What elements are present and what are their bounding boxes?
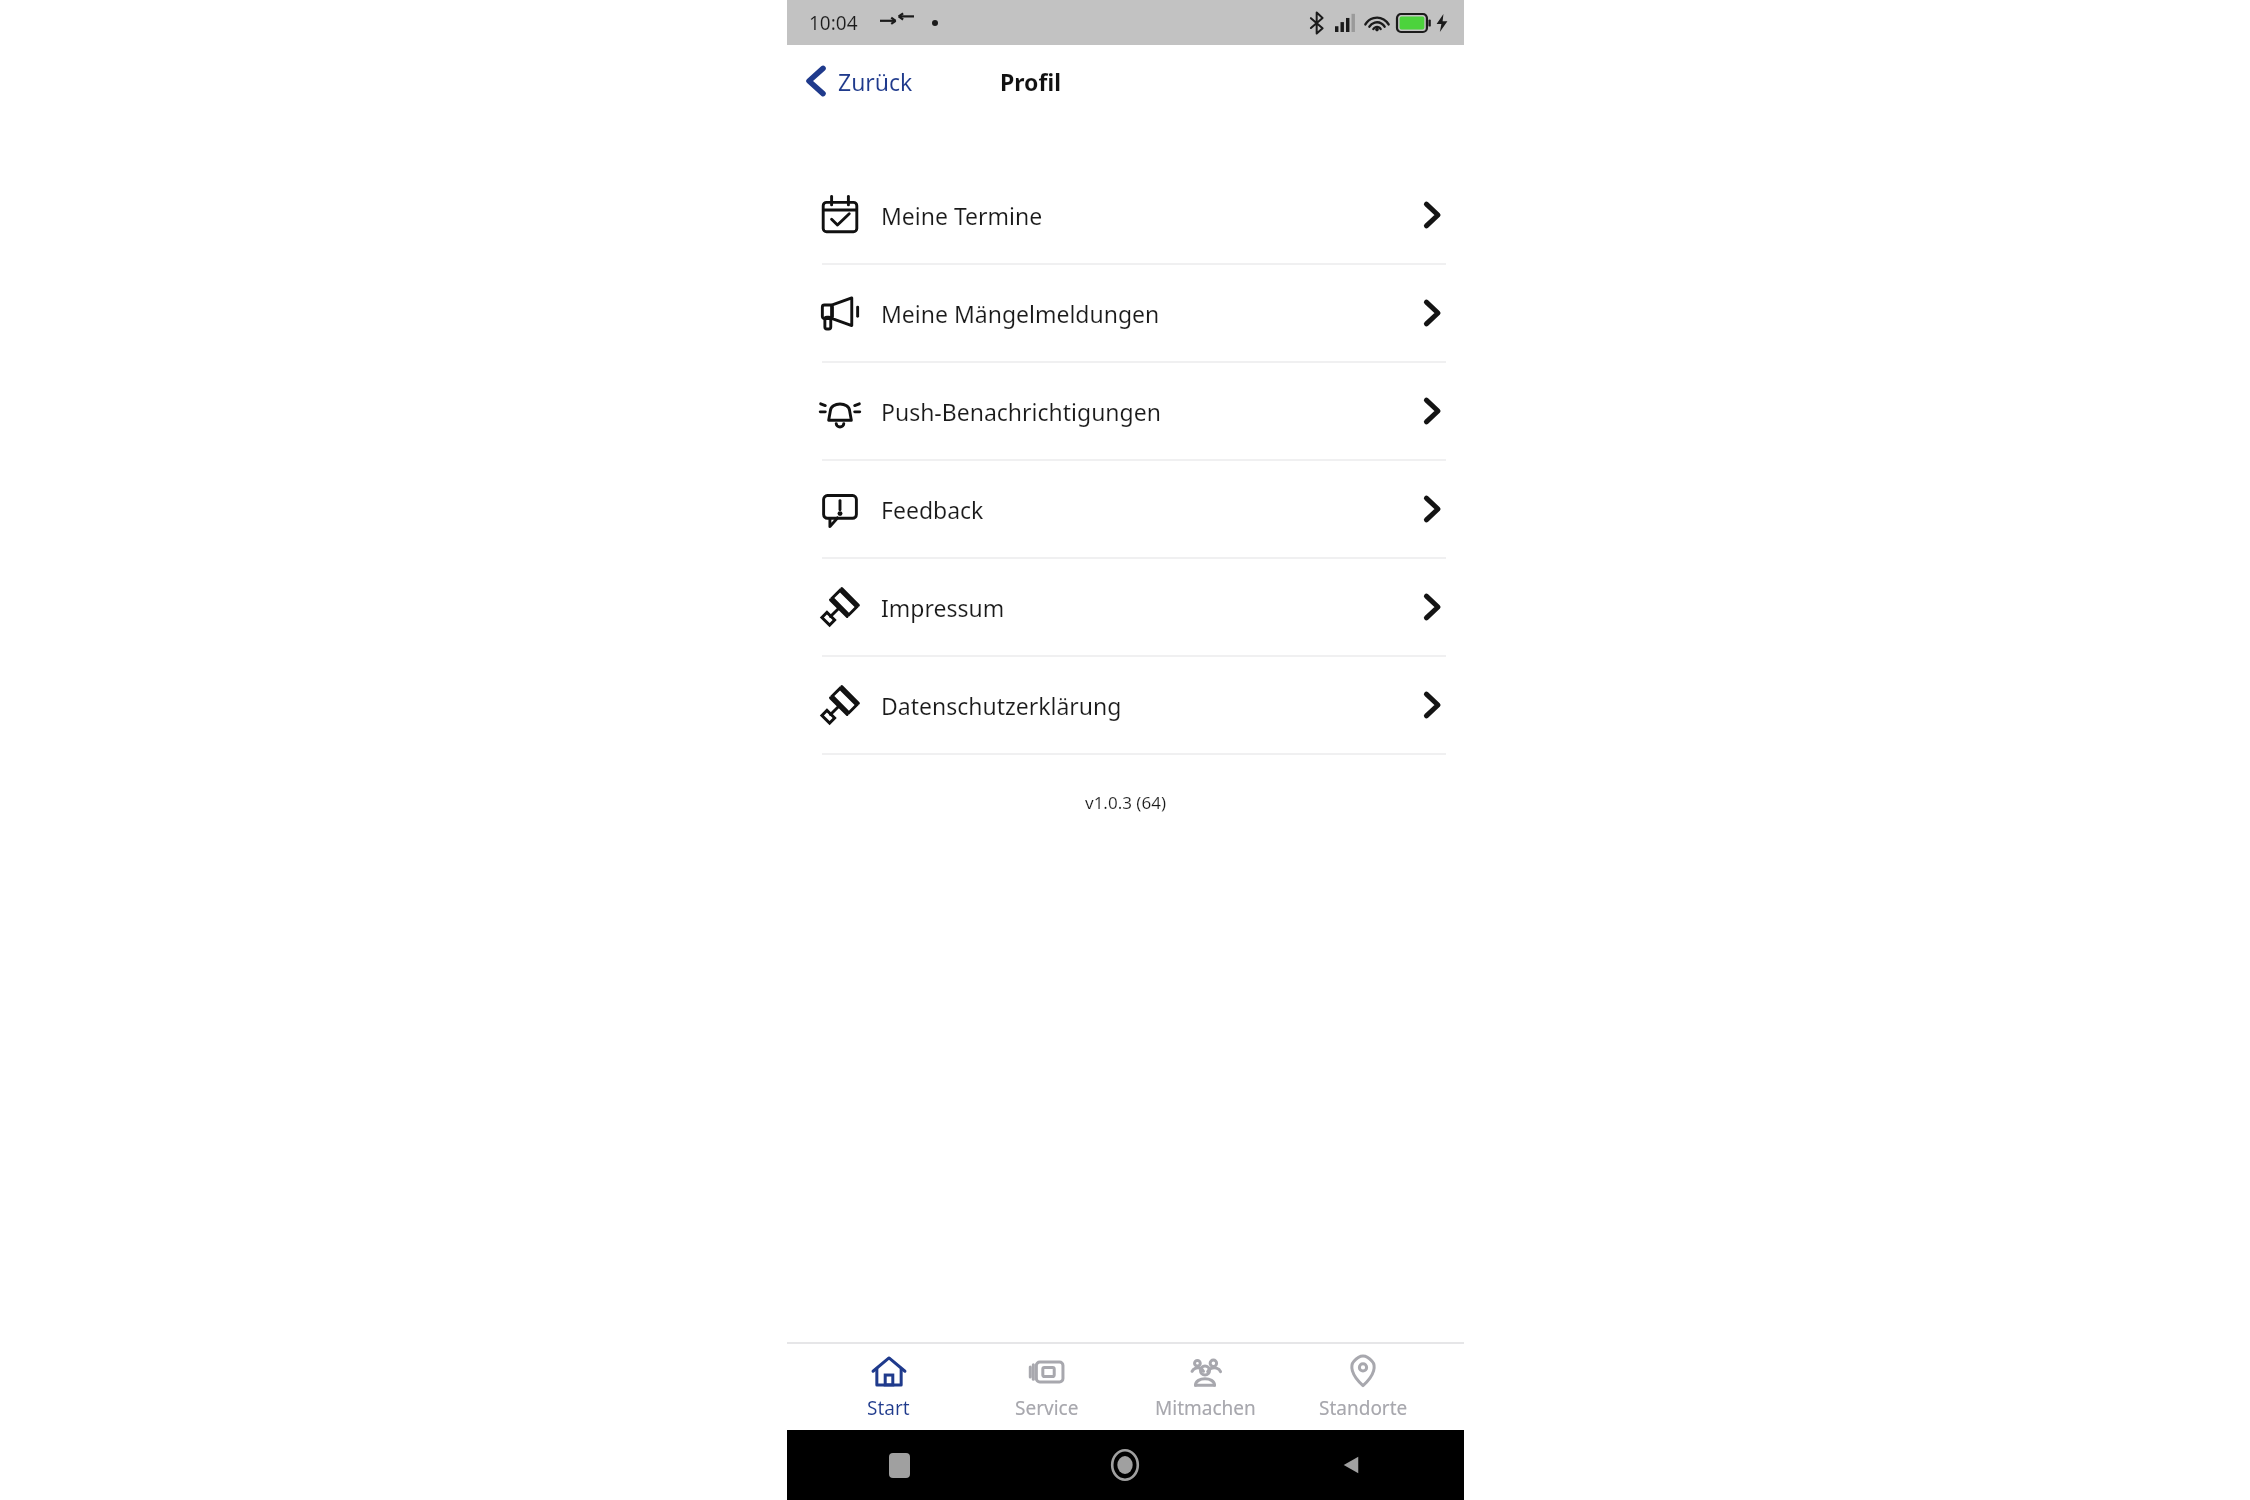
button[interactable]: Meine Termine [787, 167, 1464, 263]
staticText: v1.0.3 (64) [787, 791, 1464, 814]
staticText: Datenschutzerklärung [881, 690, 1422, 721]
button[interactable]: Datenschutzerklärung [787, 657, 1464, 753]
staticText: Impressum [881, 592, 1422, 623]
button[interactable]: Back [1238, 1430, 1464, 1500]
staticText: Start [867, 1395, 910, 1421]
button[interactable]: Service [968, 1344, 1126, 1430]
staticText: Zurück [838, 66, 913, 97]
button[interactable]: Standorte [1284, 1344, 1442, 1430]
staticText: Mitmachen [1155, 1395, 1256, 1421]
staticText: Meine Termine [881, 200, 1422, 231]
staticText: Feedback [881, 494, 1422, 525]
button[interactable]: Impressum [787, 559, 1464, 655]
button[interactable]: Mitmachen [1126, 1344, 1284, 1430]
staticText: Profil [1000, 66, 1062, 97]
button[interactable]: Push-Benachrichtigungen [787, 363, 1464, 459]
staticText: Service [1015, 1395, 1079, 1421]
staticText: Push-Benachrichtigungen [881, 396, 1422, 427]
staticText: Meine Mängelmeldungen [881, 298, 1422, 329]
staticText: 10:04 [809, 10, 858, 36]
button[interactable]: Zurück [787, 56, 927, 106]
button[interactable]: Feedback [787, 461, 1464, 557]
button[interactable]: Start [809, 1344, 968, 1430]
button[interactable]: Meine Mängelmeldungen [787, 265, 1464, 361]
staticText: Standorte [1319, 1395, 1408, 1421]
button[interactable]: Recent apps [787, 1430, 1012, 1500]
button[interactable]: Home [1012, 1430, 1238, 1500]
